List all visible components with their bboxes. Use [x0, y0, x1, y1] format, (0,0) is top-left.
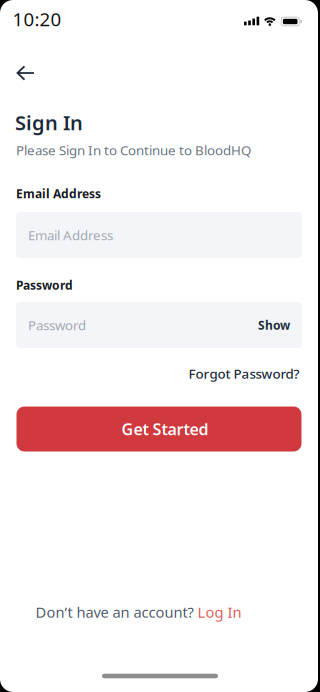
- staticText: Password: [28, 316, 86, 334]
- button[interactable]: Log In: [197, 602, 241, 622]
- staticText: Don’t have an account?: [35, 602, 193, 622]
- staticText: 10:20: [12, 7, 61, 31]
- staticText: Forgot Password?: [188, 365, 299, 382]
- staticText: Email Address: [28, 226, 113, 244]
- staticText: Email Address: [16, 185, 101, 201]
- staticText: Please Sign In to Continue to BloodHQ: [16, 141, 251, 159]
- staticText: Sign In: [15, 109, 83, 136]
- button[interactable]: Forgot Password?: [188, 365, 299, 382]
- button[interactable]: Password: [16, 302, 302, 348]
- staticText: Get Started: [121, 418, 208, 440]
- button[interactable]: Get Started: [16, 406, 301, 451]
- staticText: Show: [258, 317, 290, 333]
- staticText: Log In: [197, 602, 241, 622]
- staticText: Password: [16, 277, 73, 293]
- button[interactable]: Email Address: [16, 212, 302, 258]
- button[interactable]: [6, 55, 46, 91]
